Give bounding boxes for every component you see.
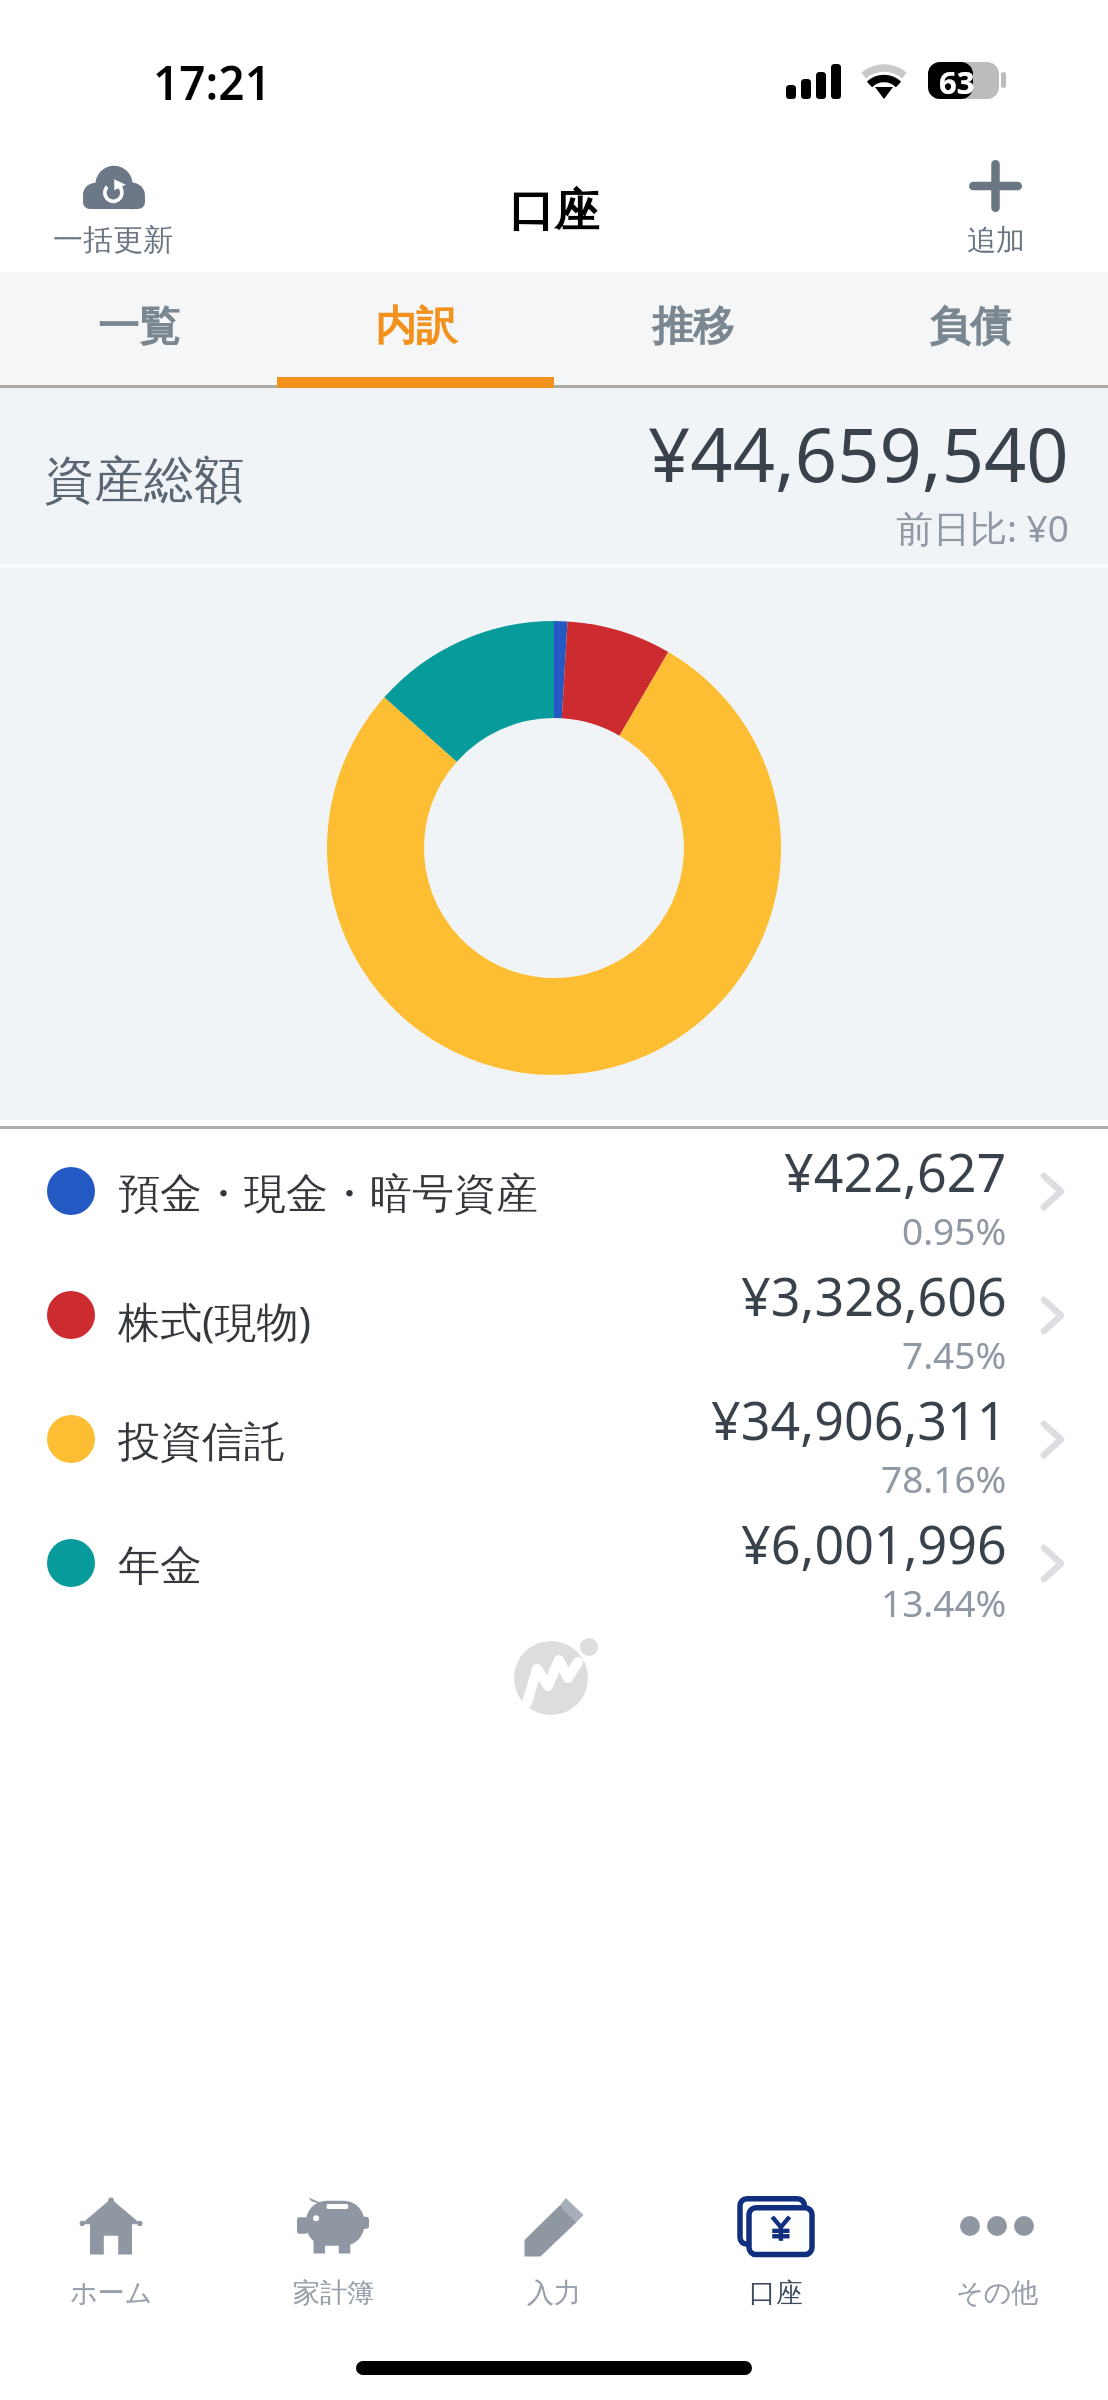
staticText: 78.16% xyxy=(881,1453,1007,1503)
button[interactable]: 年金 xyxy=(0,1501,1108,1625)
staticText: 一覧 xyxy=(98,301,180,353)
button[interactable]: 預金・現金・暗号資産 xyxy=(0,1129,1108,1253)
staticText: 一括更新 xyxy=(53,221,173,259)
button[interactable]: 推移 xyxy=(554,272,831,388)
staticText: その他 xyxy=(956,2276,1039,2310)
button[interactable]: 口座 xyxy=(665,2160,887,2340)
staticText: ¥3,328,606 xyxy=(741,1260,1007,1331)
staticText: 口座 xyxy=(749,2276,803,2310)
button[interactable]: 投資信託 xyxy=(0,1377,1108,1501)
staticText: 17:21 xyxy=(153,51,271,114)
staticText: 追加 xyxy=(967,222,1025,259)
staticText: ¥422,627 xyxy=(784,1136,1007,1207)
staticText: 年金 xyxy=(118,1540,202,1593)
button[interactable]: 一覧 xyxy=(0,272,277,388)
staticText: ¥6,001,996 xyxy=(741,1508,1007,1579)
button[interactable]: 負債 xyxy=(831,272,1108,388)
button[interactable]: 株式(現物) xyxy=(0,1253,1108,1377)
button[interactable]: 家計簿 xyxy=(222,2160,444,2340)
staticText: 投資信託 xyxy=(118,1416,286,1469)
staticText: 口座 xyxy=(509,183,599,240)
button[interactable]: ホーム xyxy=(0,2160,222,2340)
button[interactable]: その他 xyxy=(886,2160,1108,2340)
staticText: 株式(現物) xyxy=(118,1292,312,1349)
staticText: 0.95% xyxy=(902,1205,1007,1255)
button[interactable]: 入力 xyxy=(443,2160,665,2340)
staticText: ホーム xyxy=(70,2276,153,2310)
staticText: 7.45% xyxy=(902,1329,1007,1379)
staticText: 推移 xyxy=(652,301,734,353)
staticText: 負債 xyxy=(929,301,1011,353)
staticText: 預金・現金・暗号資産 xyxy=(118,1168,538,1221)
staticText: ¥44,659,540 xyxy=(648,403,1069,504)
staticText: 資産総額 xyxy=(44,449,244,512)
staticText: ¥34,906,311 xyxy=(711,1384,1007,1455)
staticText: 家計簿 xyxy=(293,2276,374,2310)
button[interactable]: 一括更新 xyxy=(44,152,182,270)
staticText: 内訳 xyxy=(375,301,457,353)
button[interactable]: 内訳 xyxy=(277,272,554,388)
button[interactable]: Add account xyxy=(940,150,1056,270)
staticText: 前日比: ¥0 xyxy=(896,502,1069,553)
staticText: 63 xyxy=(939,61,975,98)
staticText: 入力 xyxy=(527,2276,581,2310)
staticText: 13.44% xyxy=(881,1577,1007,1627)
